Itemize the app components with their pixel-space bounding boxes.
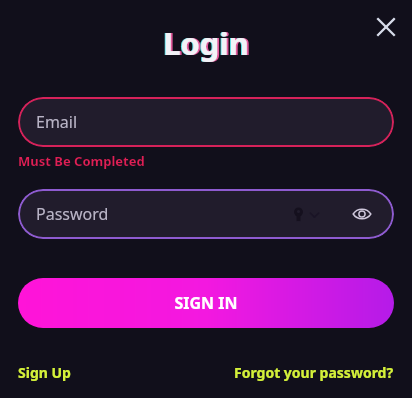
staticText: SIGN IN [174, 292, 238, 314]
button[interactable]: Email [18, 97, 394, 147]
button[interactable]: Password [18, 189, 394, 239]
staticText: Email [36, 111, 78, 133]
button[interactable]: Forgot your password? [234, 363, 394, 382]
staticText: Sign Up [18, 363, 71, 382]
staticText: Login [162, 22, 248, 64]
staticText: Password [36, 203, 109, 225]
button[interactable]: Choose saved password [291, 207, 320, 222]
staticText: Forgot your password? [234, 363, 394, 382]
staticText: Login [165, 22, 251, 64]
button[interactable]: Show password [348, 200, 376, 228]
button[interactable]: SIGN IN [18, 278, 394, 328]
button[interactable]: Sign Up [18, 363, 71, 382]
staticText: Login [163, 22, 249, 64]
button[interactable]: Close [366, 7, 406, 47]
staticText: Must Be Completed [18, 152, 145, 170]
